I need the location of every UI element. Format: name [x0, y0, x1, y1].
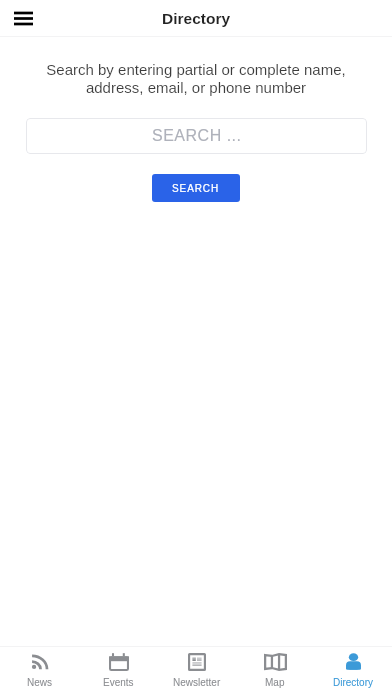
staticText: News: [27, 677, 53, 688]
staticText: Newsletter: [173, 677, 221, 688]
staticText: Events: [103, 677, 134, 688]
staticText: Map: [265, 677, 285, 688]
staticText: Directory: [162, 10, 231, 27]
button[interactable]: Open navigation menu: [5, 0, 41, 36]
button[interactable]: Directory: [314, 647, 392, 688]
button[interactable]: Events: [79, 647, 158, 688]
button[interactable]: News: [0, 647, 79, 688]
button[interactable]: Map: [236, 647, 314, 688]
staticText: SEARCH: [172, 183, 220, 194]
staticText: Search by entering partial or complete n…: [36, 61, 356, 96]
button[interactable]: SEARCH ...: [26, 118, 367, 154]
button[interactable]: SEARCH: [152, 174, 240, 202]
staticText: SEARCH ...: [152, 127, 242, 145]
button[interactable]: Newsletter: [158, 647, 236, 688]
staticText: Directory: [333, 677, 374, 688]
